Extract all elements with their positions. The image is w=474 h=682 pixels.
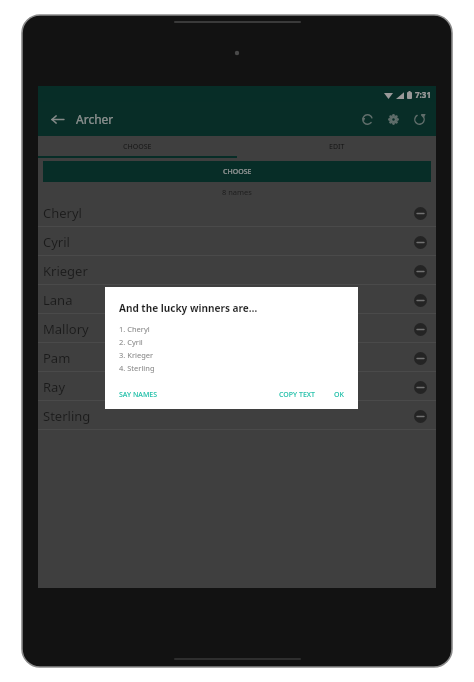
button[interactable]: Krieger — [38, 256, 436, 285]
button[interactable]: Remove Mallory — [410, 319, 430, 339]
staticText: 2. Cyril — [119, 337, 143, 347]
button[interactable]: Ray — [38, 372, 436, 401]
staticText: Pam — [43, 349, 71, 367]
staticText: Mallory — [43, 320, 89, 338]
staticText: Archer — [76, 111, 114, 127]
button[interactable]: SAY NAMES — [115, 387, 162, 403]
staticText: CHOOSE — [223, 167, 252, 177]
button[interactable]: Back — [42, 104, 72, 134]
staticText: Ray — [43, 378, 66, 396]
button[interactable]: Remove Ray — [410, 377, 430, 397]
staticText: And the lucky winners are… — [119, 301, 258, 315]
staticText: Krieger — [43, 262, 88, 280]
button[interactable]: Remove Krieger — [410, 261, 430, 281]
button[interactable]: Remove Lana — [410, 290, 430, 310]
staticText: EDIT — [329, 142, 345, 152]
staticText: 8 names — [222, 187, 252, 197]
button[interactable]: Refresh — [406, 106, 432, 132]
button[interactable]: Pam — [38, 343, 436, 372]
button[interactable]: History — [354, 106, 380, 132]
button[interactable]: CHOOSE — [43, 161, 431, 182]
button[interactable]: COPY TEXT — [275, 387, 320, 403]
button[interactable]: Remove Pam — [410, 348, 430, 368]
button[interactable]: Cheryl — [38, 198, 436, 227]
button[interactable]: Settings — [380, 106, 406, 132]
staticText: OK — [334, 390, 344, 400]
staticText: 3. Krieger — [119, 350, 154, 360]
staticText: SAY NAMES — [119, 390, 158, 400]
button[interactable]: OK — [330, 387, 348, 403]
staticText: 7:31 — [415, 89, 431, 100]
button[interactable]: Remove Sterling — [410, 406, 430, 426]
button[interactable]: Remove Cyril — [410, 232, 430, 252]
staticText: Cheryl — [43, 204, 82, 222]
staticText: Sterling — [43, 407, 91, 425]
staticText: Lana — [43, 291, 73, 309]
button[interactable]: Remove Cheryl — [410, 203, 430, 223]
button[interactable]: Mallory — [38, 314, 436, 343]
staticText: 1. Cheryl — [119, 324, 150, 334]
button[interactable]: Cyril — [38, 227, 436, 256]
staticText: Cyril — [43, 233, 70, 251]
staticText: CHOOSE — [123, 142, 152, 152]
button[interactable]: Sterling — [38, 401, 436, 430]
button[interactable]: CHOOSE — [38, 136, 237, 158]
staticText: COPY TEXT — [279, 390, 316, 400]
button[interactable]: Lana — [38, 285, 436, 314]
staticText: 4. Sterling — [119, 363, 155, 373]
